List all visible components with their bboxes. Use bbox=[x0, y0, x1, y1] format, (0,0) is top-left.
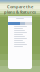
staticText: plans & features bbox=[4, 9, 36, 15]
staticText: Compare the bbox=[7, 4, 33, 9]
